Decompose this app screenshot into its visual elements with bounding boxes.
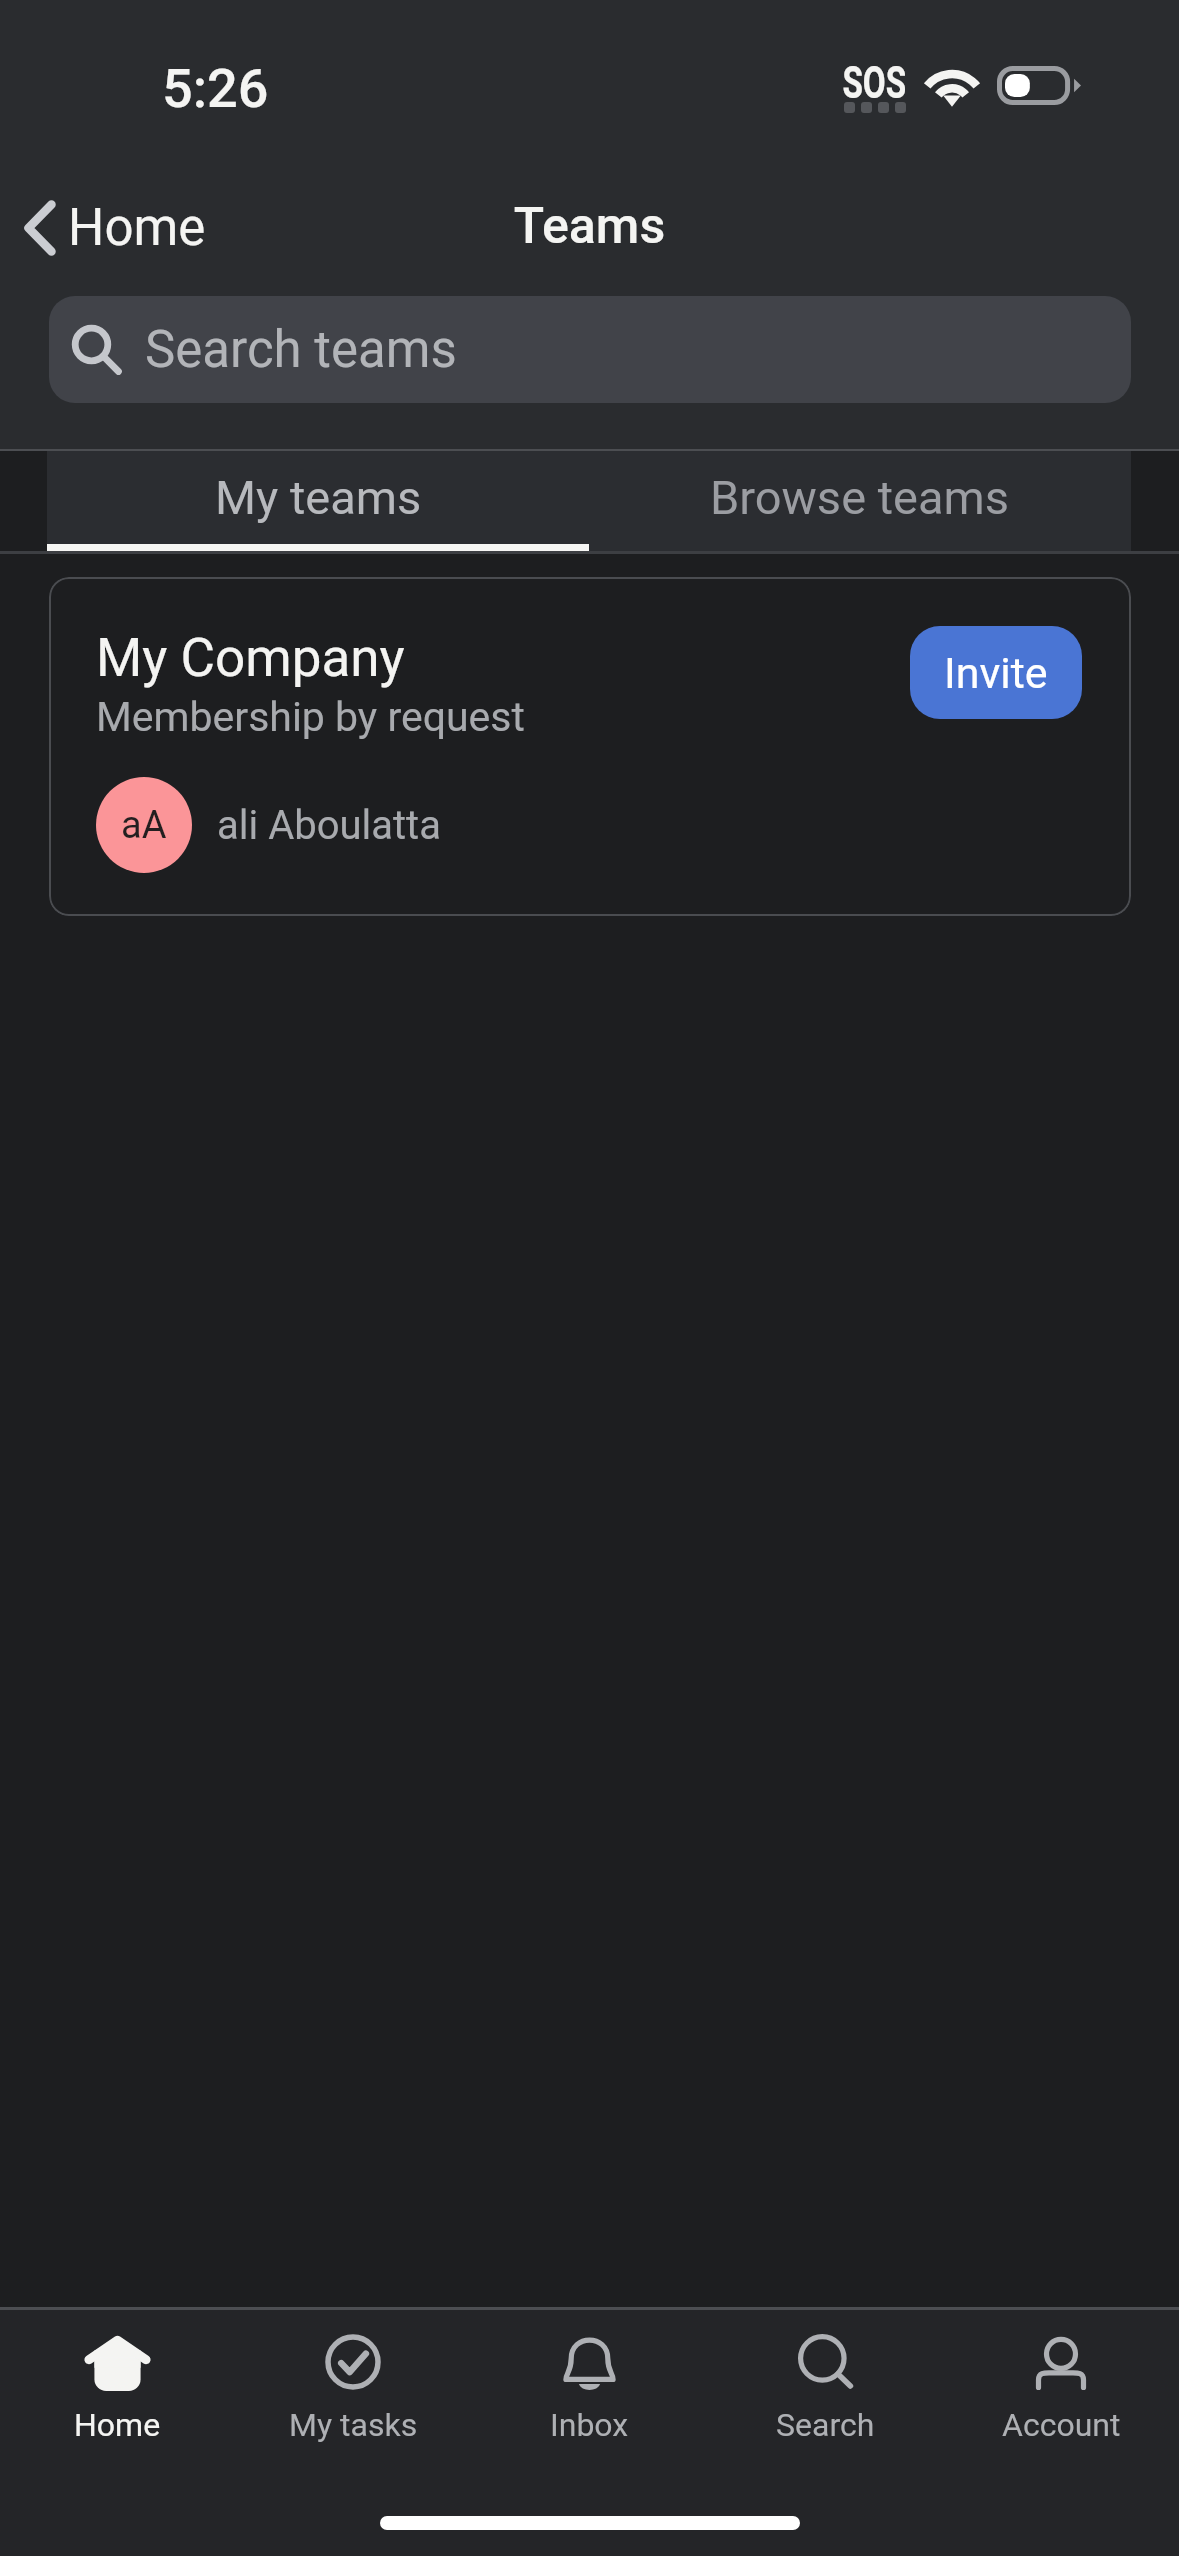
button[interactable]: My teams — [47, 451, 589, 551]
staticText: 5:26 — [162, 57, 269, 120]
staticText: Inbox — [550, 2406, 629, 2444]
button[interactable]: Inbox — [471, 2310, 707, 2556]
staticText: Membership by request — [96, 693, 525, 741]
staticText: SOS — [842, 57, 907, 109]
button[interactable]: My tasks — [235, 2310, 471, 2556]
button[interactable]: Invite — [910, 626, 1082, 719]
button[interactable]: Back to Home — [24, 193, 206, 263]
staticText: Teams — [0, 197, 1179, 256]
button[interactable]: My Company — [49, 577, 1131, 916]
staticText: Home — [68, 198, 206, 258]
staticText: My Company — [96, 627, 405, 689]
staticText: Browse teams — [710, 470, 1010, 525]
button[interactable]: Search teams — [49, 296, 1131, 403]
staticText: Home — [74, 2406, 161, 2444]
staticText: Search teams — [145, 320, 457, 380]
staticText: My tasks — [289, 2406, 418, 2444]
button[interactable]: Browse teams — [589, 451, 1131, 551]
staticText: Search — [776, 2406, 875, 2444]
staticText: My teams — [215, 470, 422, 525]
button[interactable]: Home — [0, 2310, 235, 2556]
staticText: ali Aboulatta — [217, 802, 441, 849]
staticText: aA — [121, 803, 167, 848]
button[interactable]: Account — [943, 2310, 1179, 2556]
button[interactable]: Search — [707, 2310, 943, 2556]
staticText: Account — [1002, 2406, 1121, 2444]
staticText: Invite — [944, 648, 1048, 698]
